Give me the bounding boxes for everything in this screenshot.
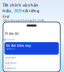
staticText: Ví của tôi — [5, 32, 19, 35]
button[interactable]: Ưu đãi đang chờ — [3, 67, 60, 72]
staticText: Giao dịch gần đây — [5, 62, 17, 64]
button[interactable]: Giao dịch gần đây — [3, 61, 60, 67]
staticText: Ưu đãi đang chờ — [5, 67, 16, 69]
staticText: Ưu đãi hôm nay — [6, 44, 31, 47]
staticText: Tất chính và nhãn — [3, 2, 39, 8]
button[interactable]: Số dư khả dụng — [3, 56, 60, 61]
staticText: Số dư khả dụng — [5, 57, 16, 59]
staticText: Đăng ký ngay hôm nay để nhận — [3, 19, 45, 22]
staticText: trợ — [3, 13, 10, 19]
staticText: tối riêng — [23, 8, 40, 13]
staticText: 3 mục mới — [5, 64, 11, 66]
staticText: Ưu đãi nổi bật — [6, 39, 15, 41]
staticText: Xem ngay — [5, 69, 12, 71]
staticText: Giảm đến 50% — [6, 48, 15, 50]
staticText: hiệu, — [3, 8, 13, 13]
button[interactable]: Ưu đãi hôm nay — [4, 42, 59, 55]
staticText: 2025 — [14, 8, 22, 13]
